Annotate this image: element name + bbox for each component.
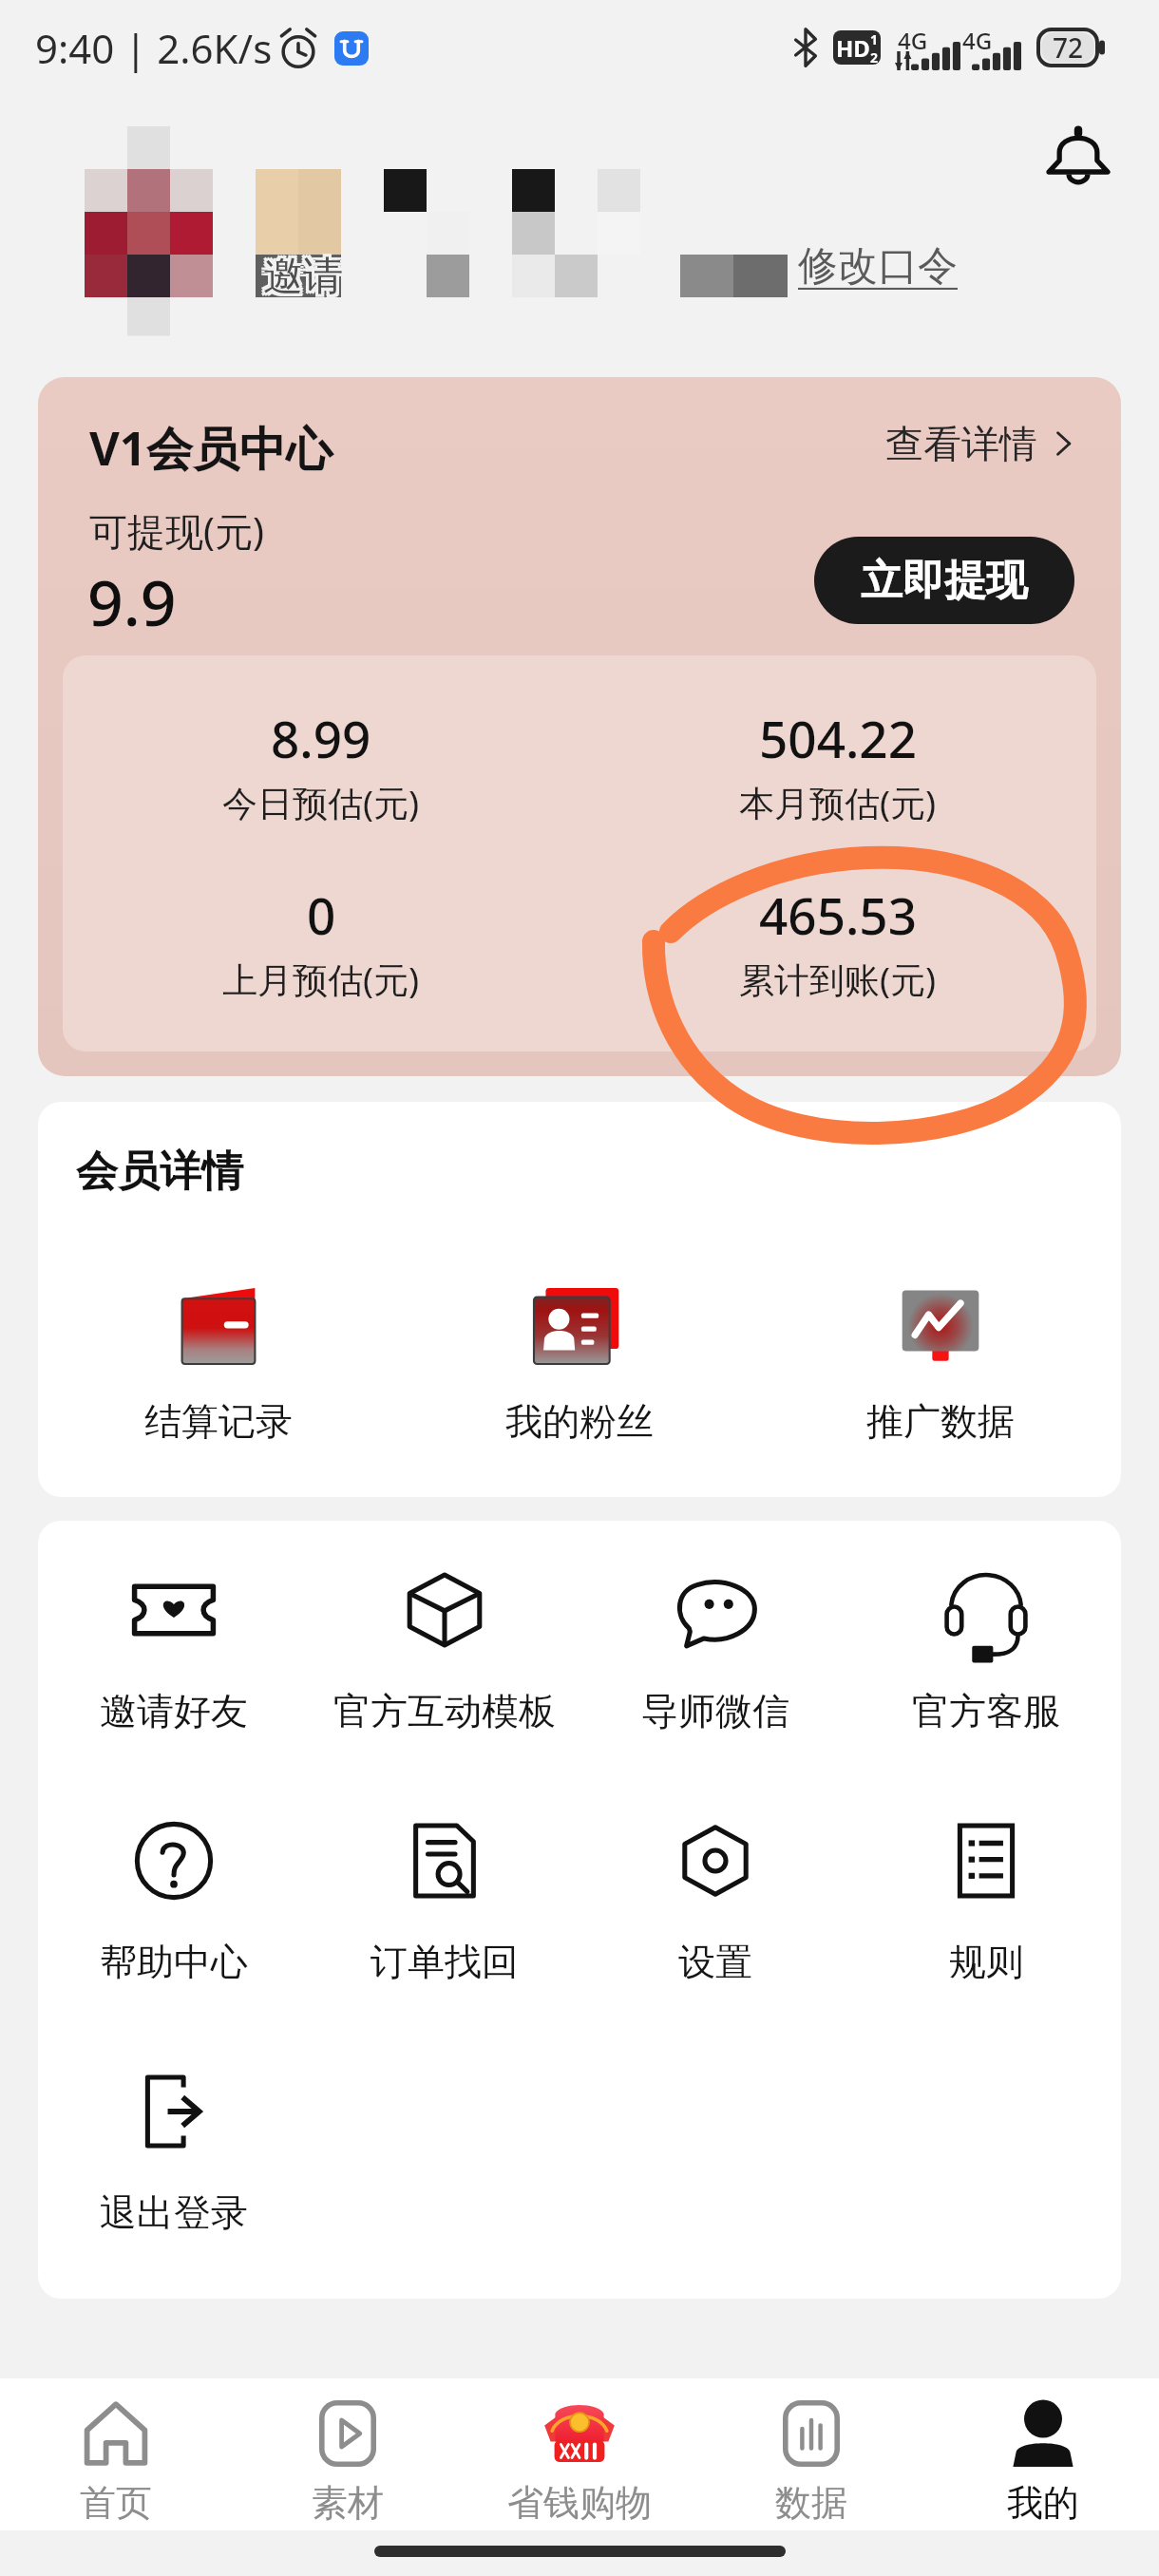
staticText: 规则 — [949, 1939, 1023, 1985]
staticText: 官方互动模板 — [333, 1688, 556, 1734]
staticText: 本月预估(元) — [739, 778, 937, 826]
button[interactable]: 帮助中心 — [38, 1819, 309, 2070]
button[interactable]: 立即提现 — [814, 537, 1074, 624]
staticText: 邀请 — [266, 249, 346, 299]
staticText: 立即提现 — [861, 555, 1028, 607]
button[interactable]: 官方客服 — [850, 1568, 1121, 1819]
staticText: 9.9 — [87, 559, 177, 644]
staticText: 465.53 — [759, 881, 917, 949]
staticText: 72 — [1053, 29, 1084, 66]
staticText: 2 — [870, 48, 879, 65]
staticText: 4G — [898, 25, 928, 56]
staticText: 订单找回 — [370, 1939, 519, 1985]
staticText: 上月预估(元) — [222, 955, 420, 1003]
staticText: 4G — [962, 25, 993, 56]
staticText: 邀请 — [266, 255, 346, 305]
button[interactable]: Notifications — [1031, 107, 1126, 202]
button[interactable]: 邀请好友 — [38, 1568, 309, 1819]
button[interactable]: 规则 — [850, 1819, 1121, 2070]
staticText: 推广数据 — [866, 1398, 1015, 1445]
button[interactable]: 我的粉丝 — [399, 1288, 760, 1445]
button[interactable]: 我的 — [927, 2378, 1159, 2530]
staticText: 首页 — [80, 2480, 152, 2526]
staticText: 退出登录 — [100, 2189, 248, 2236]
button[interactable]: 465.53 — [579, 881, 1096, 1003]
staticText: 可提现(元) — [89, 504, 264, 557]
staticText: 0 — [307, 881, 336, 949]
staticText: 会员详情 — [76, 1146, 243, 1198]
staticText: 邀请 — [260, 255, 340, 305]
staticText: 邀请 — [263, 252, 343, 302]
staticText: 邀请 — [263, 252, 343, 302]
button[interactable]: 设置 — [579, 1819, 850, 2070]
button[interactable]: 504.22 — [579, 704, 1096, 826]
button[interactable]: 导师微信 — [579, 1568, 850, 1819]
staticText: 查看详情 — [885, 420, 1037, 467]
button[interactable]: 结算记录 — [38, 1288, 399, 1445]
staticText: 数据 — [775, 2480, 847, 2526]
staticText: 8.99 — [271, 704, 371, 772]
button[interactable]: 数据 — [695, 2378, 927, 2530]
button[interactable]: 推广数据 — [760, 1288, 1121, 1445]
staticText: 省钱购物 — [507, 2480, 652, 2526]
staticText: HD — [836, 32, 870, 64]
staticText: 我的粉丝 — [505, 1398, 654, 1445]
button[interactable]: 8.99 — [63, 704, 579, 826]
staticText: 邀请 — [266, 252, 346, 302]
staticText: 9:40 | 2.6K/s — [35, 21, 273, 75]
button[interactable]: 0 — [63, 881, 579, 1003]
staticText: 邀请 — [260, 249, 340, 299]
staticText: 1 — [870, 30, 879, 48]
button[interactable]: 订单找回 — [309, 1819, 579, 2070]
button[interactable]: 素材 — [232, 2378, 464, 2530]
staticText: 邀请 — [263, 249, 343, 299]
staticText: 结算记录 — [144, 1398, 293, 1445]
staticText: 素材 — [312, 2480, 384, 2526]
staticText: 邀请好友 — [100, 1688, 248, 1734]
button[interactable]: 查看详情 — [885, 420, 1079, 467]
staticText: 邀请 — [260, 252, 340, 302]
staticText: 邀请 — [263, 255, 343, 305]
button[interactable] — [76, 152, 798, 342]
button[interactable]: 首页 — [0, 2378, 232, 2530]
button[interactable]: 省钱购物 — [464, 2378, 695, 2530]
staticText: 帮助中心 — [100, 1939, 248, 1985]
staticText: 设置 — [678, 1939, 752, 1985]
staticText: 累计到账(元) — [739, 955, 937, 1003]
staticText: V1会员中心 — [89, 416, 332, 480]
staticText: 官方客服 — [912, 1688, 1060, 1734]
staticText: 我的 — [1007, 2480, 1079, 2526]
staticText: 修改口令 — [798, 241, 958, 292]
staticText: 今日预估(元) — [222, 778, 420, 826]
button[interactable]: 修改口令 — [798, 241, 958, 292]
staticText: 导师微信 — [641, 1688, 789, 1734]
button[interactable]: 官方互动模板 — [309, 1568, 579, 1819]
staticText: 504.22 — [759, 704, 917, 772]
button[interactable]: 退出登录 — [38, 2070, 309, 2299]
